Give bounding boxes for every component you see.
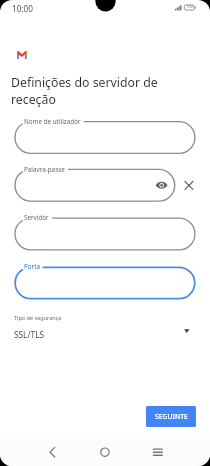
button[interactable]: Tipo de segurança [10, 310, 200, 342]
staticText: Palavra-passe [24, 165, 65, 174]
staticText: 100 [186, 4, 194, 10]
button[interactable]: Recents [144, 440, 172, 466]
button[interactable]: Home [91, 440, 119, 466]
button[interactable]: SEGUINTE [146, 406, 196, 427]
staticText: SEGUINTE [155, 412, 188, 421]
button[interactable]: Mostrar palavra-passe [155, 179, 168, 192]
button[interactable]: Back [38, 440, 66, 466]
staticText: Porta [24, 262, 41, 271]
staticText: SSL/TLS [14, 329, 45, 340]
button[interactable]: Limpar [182, 179, 196, 193]
staticText: Nome de utilizador [24, 117, 81, 126]
staticText: Tipo de segurança [14, 314, 62, 321]
staticText: Servidor [24, 213, 49, 222]
staticText: Definições do servidor de receção [11, 74, 163, 107]
other: Gmail [0, 0, 210, 466]
button[interactable] [14, 217, 195, 250]
button[interactable] [14, 121, 195, 154]
staticText: 10:00 [12, 3, 33, 14]
button[interactable] [14, 169, 175, 202]
button[interactable] [14, 267, 195, 300]
